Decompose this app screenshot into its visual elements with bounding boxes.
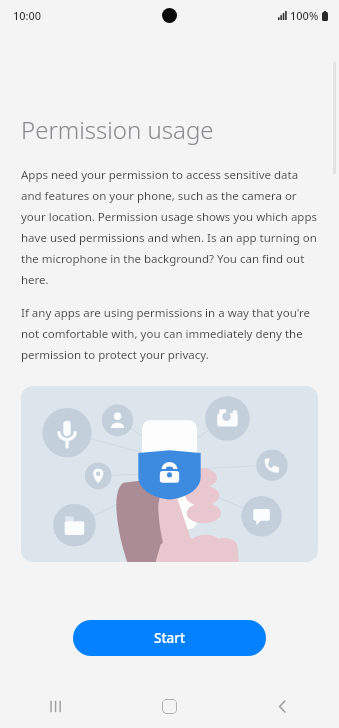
button[interactable]: Recents bbox=[0, 684, 113, 728]
button[interactable]: Start bbox=[73, 620, 266, 656]
staticText: 100% bbox=[290, 8, 319, 23]
staticText: Apps need your permission to access sens… bbox=[21, 167, 321, 288]
staticText: If any apps are using permissions in a w… bbox=[21, 305, 321, 363]
staticText: 10:00 bbox=[13, 8, 42, 23]
button[interactable]: Home bbox=[113, 684, 226, 728]
button[interactable]: Back bbox=[226, 684, 339, 728]
staticText: Start bbox=[154, 629, 186, 647]
staticText: Permission usage bbox=[21, 113, 214, 146]
